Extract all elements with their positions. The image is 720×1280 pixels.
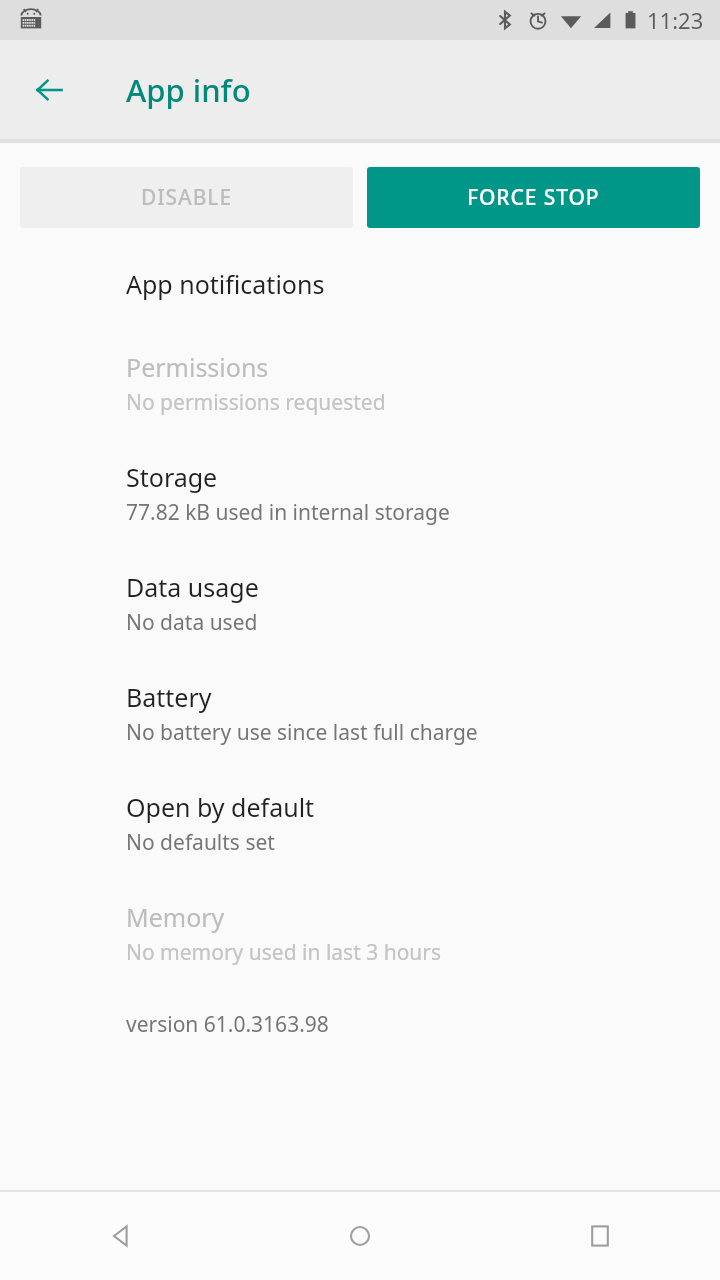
staticText: DISABLE	[141, 183, 233, 212]
staticText: No defaults set	[126, 828, 275, 857]
staticText: No permissions requested	[126, 388, 386, 417]
button[interactable]: Recent apps	[480, 1192, 720, 1280]
button[interactable]: Permissions	[0, 350, 720, 417]
staticText: Memory	[126, 900, 225, 934]
button[interactable]: FORCE STOP	[367, 167, 700, 228]
staticText: Storage	[126, 460, 218, 494]
staticText: Data usage	[126, 570, 259, 604]
staticText: version 61.0.3163.98	[126, 1010, 329, 1039]
button[interactable]: Home	[240, 1192, 480, 1280]
button[interactable]: Back	[21, 62, 77, 118]
staticText: FORCE STOP	[467, 183, 600, 212]
staticText: No battery use since last full charge	[126, 718, 478, 747]
staticText: App notifications	[126, 267, 325, 301]
button[interactable]: App notifications	[0, 267, 720, 301]
staticText: 77.82 kB used in internal storage	[126, 498, 450, 527]
button[interactable]: Open by default	[0, 790, 720, 857]
button[interactable]: Storage	[0, 460, 720, 527]
staticText: No memory used in last 3 hours	[126, 938, 442, 967]
staticText: Battery	[126, 680, 212, 714]
staticText: App info	[126, 69, 251, 111]
button[interactable]: Data usage	[0, 570, 720, 637]
button[interactable]: Back	[0, 1192, 240, 1280]
staticText: 11:23	[647, 5, 704, 35]
button[interactable]: Battery	[0, 680, 720, 747]
staticText: No data used	[126, 608, 258, 637]
staticText: Permissions	[126, 350, 269, 384]
button[interactable]: DISABLE	[20, 167, 353, 228]
staticText: Open by default	[126, 790, 315, 824]
button[interactable]: Memory	[0, 900, 720, 967]
